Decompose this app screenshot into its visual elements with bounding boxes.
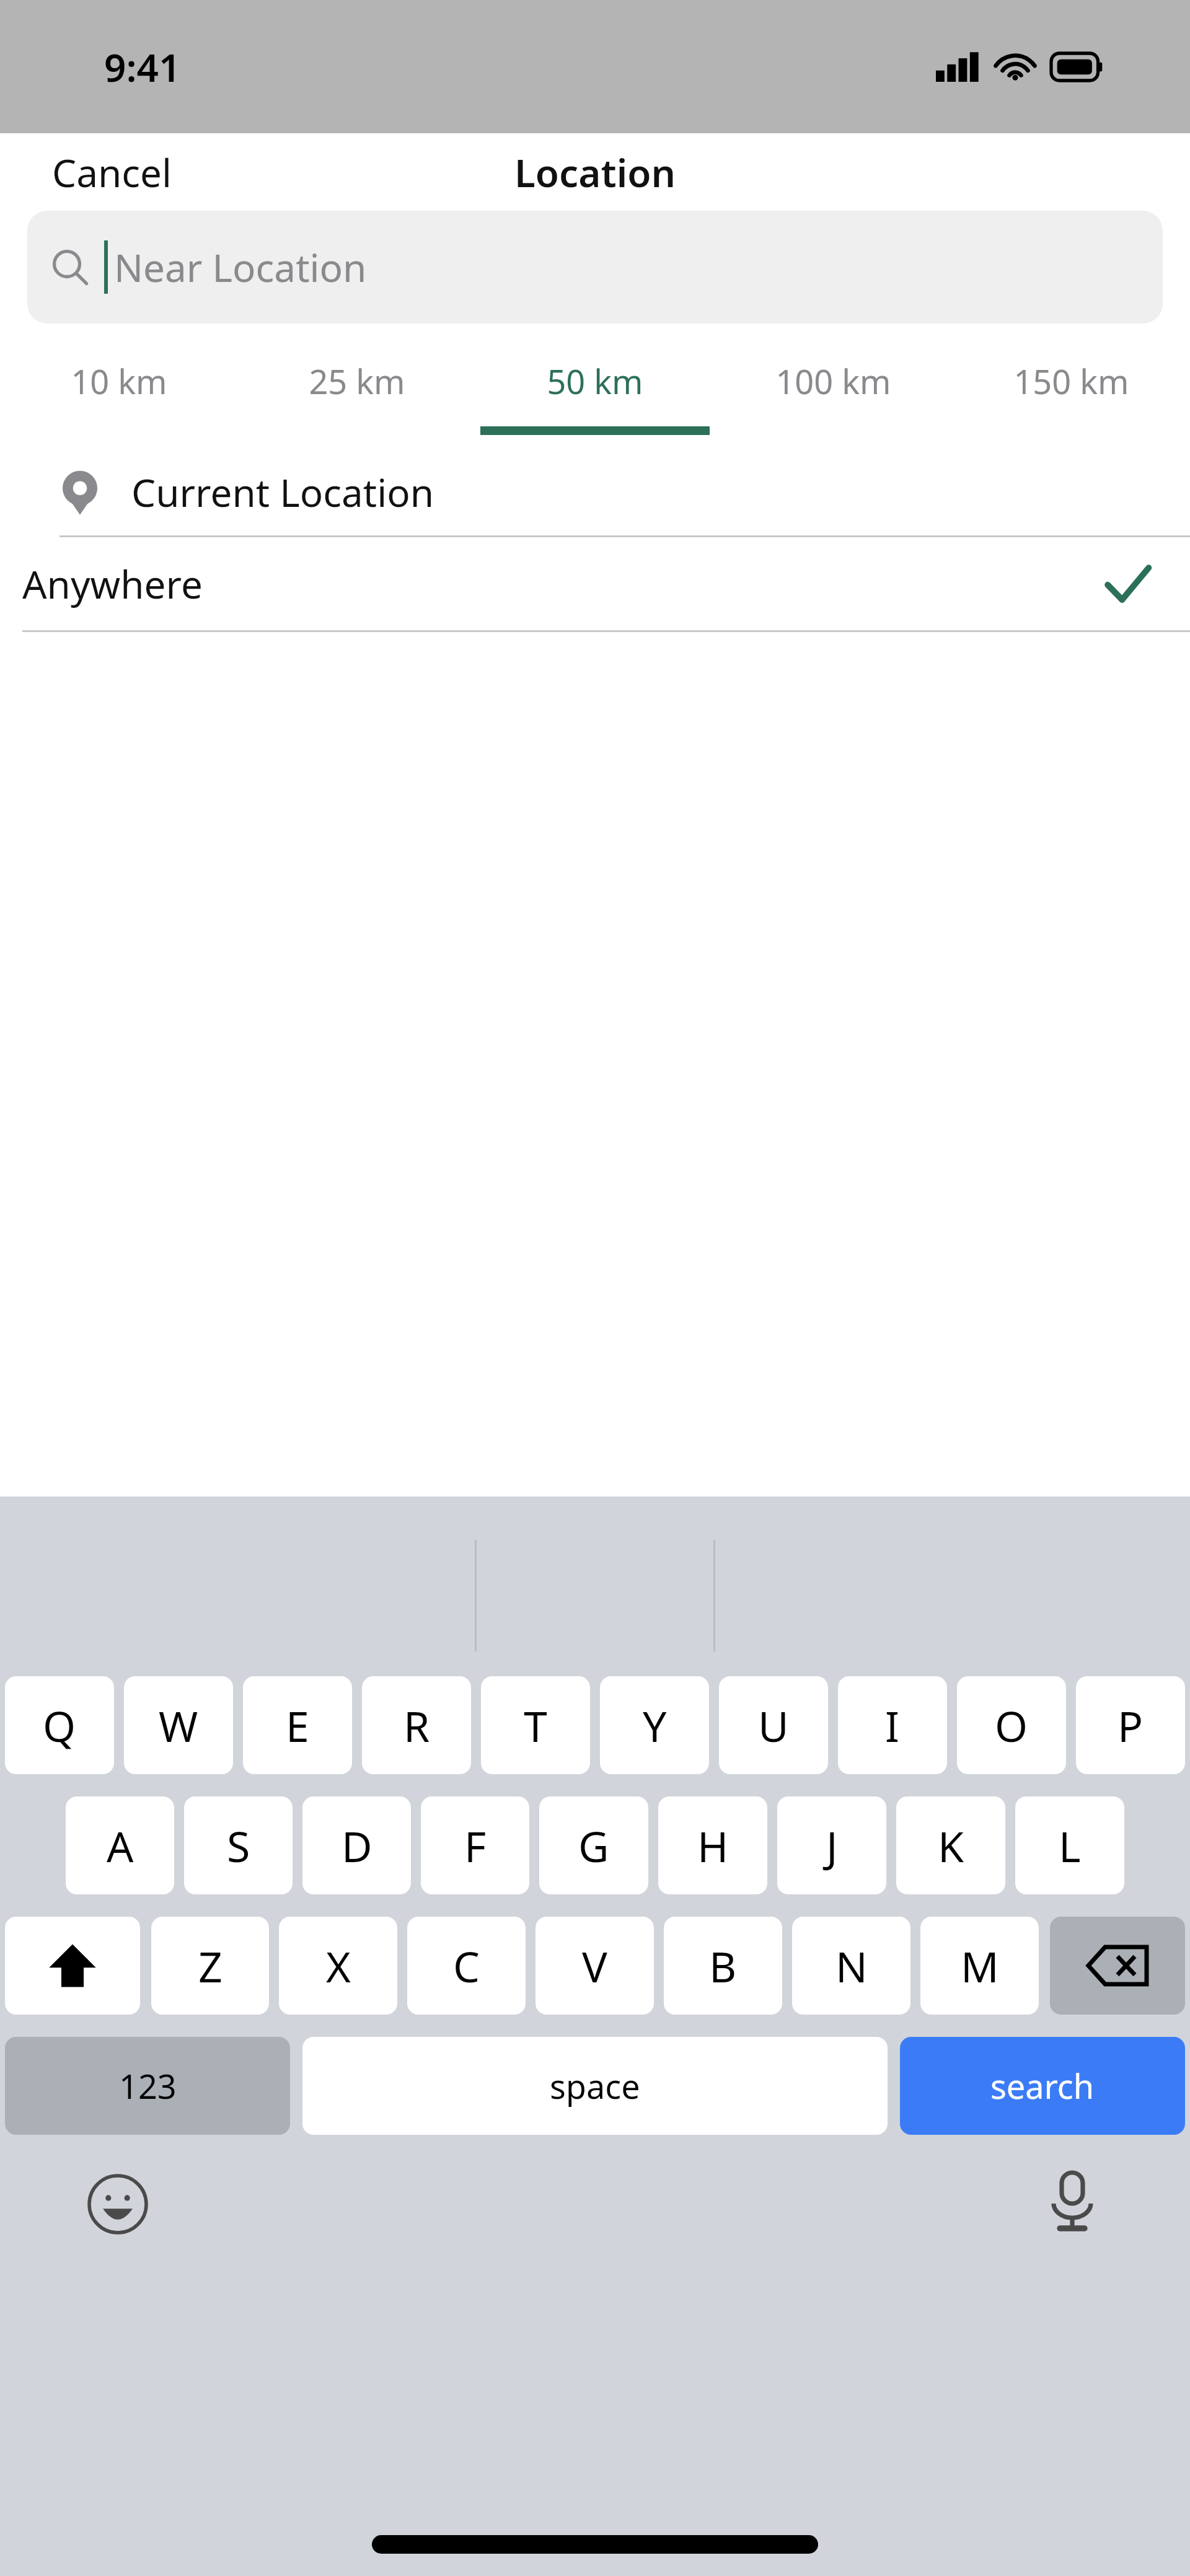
button[interactable]: D [302,1796,411,1894]
button[interactable]: Anywhere [0,537,1190,630]
other: Selected [1101,557,1154,610]
staticText: J [826,1817,838,1875]
button[interactable]: 150 km [952,349,1190,413]
button[interactable]: Near Location [27,211,1163,323]
button[interactable]: M [920,1917,1039,2015]
button[interactable]: Backspace [1050,1917,1185,2015]
staticText: V [582,1937,607,1995]
staticText: 50 km [547,358,643,404]
button[interactable]: search [900,2037,1185,2135]
staticText: 100 km [775,358,891,404]
staticText: Q [43,1697,76,1754]
staticText: E [286,1697,309,1754]
button[interactable]: J [777,1796,886,1894]
button[interactable]: I [838,1676,947,1774]
button[interactable]: O [957,1676,1066,1774]
staticText: X [326,1937,351,1995]
button[interactable]: V [535,1917,654,2015]
button[interactable]: H [658,1796,767,1894]
staticText: K [938,1817,964,1875]
staticText: D [342,1817,372,1875]
button[interactable]: F [421,1796,529,1894]
button[interactable]: S [184,1796,293,1894]
staticText: B [709,1937,737,1995]
staticText: H [697,1817,729,1875]
staticText: M [961,1937,999,1995]
staticText: W [159,1697,198,1754]
staticText: space [550,2063,640,2109]
button[interactable]: space [302,2037,888,2135]
staticText: O [995,1697,1028,1754]
staticText: Current Location [131,466,434,518]
button[interactable]: Cancel [0,135,224,209]
button[interactable]: B [664,1917,782,2015]
staticText: Anywhere [22,558,203,610]
button[interactable]: W [124,1676,233,1774]
button[interactable]: T [481,1676,590,1774]
staticText: 10 km [71,358,167,404]
staticText: F [464,1817,487,1875]
button[interactable]: Q [5,1676,114,1774]
button[interactable]: Z [151,1917,269,2015]
button[interactable]: Y [600,1676,709,1774]
staticText: Y [643,1697,667,1754]
button[interactable]: Dictation [1041,2169,1103,2231]
button[interactable]: Emoji [87,2173,149,2235]
staticText: I [885,1697,900,1754]
button[interactable]: 25 km [238,349,476,413]
button[interactable]: U [719,1676,828,1774]
staticText: T [524,1697,547,1754]
button[interactable]: N [792,1917,910,2015]
button[interactable]: E [243,1676,352,1774]
button[interactable]: 10 km [0,349,238,413]
staticText: A [107,1817,134,1875]
button[interactable]: 123 [5,2037,290,2135]
staticText: G [578,1817,609,1875]
staticText: R [403,1697,430,1754]
button[interactable]: R [362,1676,471,1774]
staticText: C [453,1937,480,1995]
button[interactable]: 50 km [476,349,714,413]
staticText: 9:41 [104,41,181,93]
staticText: Cancel [52,146,172,198]
staticText: 123 [119,2063,177,2109]
staticText: search [990,2063,1095,2109]
button[interactable]: Shift [5,1917,140,2015]
button[interactable]: C [407,1917,526,2015]
staticText: Location [514,146,676,198]
staticText: S [227,1817,250,1875]
staticText: Near Location [114,241,367,293]
button[interactable]: G [539,1796,648,1894]
staticText: 25 km [309,358,405,404]
staticText: P [1117,1697,1144,1754]
button[interactable]: L [1015,1796,1124,1894]
button[interactable]: P [1076,1676,1185,1774]
staticText: N [835,1937,868,1995]
staticText: 150 km [1013,358,1129,404]
button[interactable]: Current Location [0,449,1190,535]
button[interactable]: 100 km [714,349,952,413]
staticText: L [1059,1817,1081,1875]
button[interactable]: K [896,1796,1005,1894]
staticText: U [758,1697,789,1754]
button[interactable]: A [66,1796,174,1894]
staticText: Z [198,1937,223,1995]
button[interactable]: X [279,1917,397,2015]
